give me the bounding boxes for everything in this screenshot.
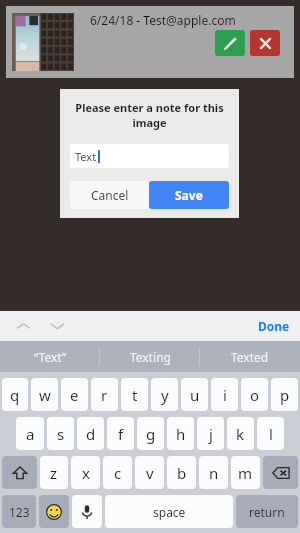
button[interactable]: v <box>135 456 164 489</box>
button[interactable]: space <box>105 495 233 528</box>
staticText: Done <box>258 318 290 334</box>
staticText: o <box>250 385 260 405</box>
button[interactable]: Previous field <box>12 315 34 337</box>
button[interactable]: t <box>121 378 148 411</box>
button[interactable]: Texted <box>200 341 300 372</box>
button[interactable]: Done <box>258 318 290 334</box>
button[interactable]: b <box>167 456 196 489</box>
staticText: 123 <box>9 504 30 520</box>
staticText: Please enter a note for this image <box>74 100 225 130</box>
button[interactable]: Backspace <box>263 456 298 489</box>
button[interactable]: h <box>167 417 194 450</box>
staticText: Save <box>175 187 203 203</box>
staticText: e <box>70 385 79 405</box>
button[interactable]: Next field <box>46 315 68 337</box>
button[interactable]: y <box>151 378 178 411</box>
button[interactable]: Cancel <box>70 181 149 209</box>
staticText: p <box>280 385 290 405</box>
button[interactable]: j <box>197 417 224 450</box>
button[interactable]: 123 <box>2 495 36 528</box>
button[interactable]: e <box>61 378 88 411</box>
button[interactable]: Shift <box>2 456 37 489</box>
staticText: m <box>238 463 253 483</box>
staticText: v <box>146 463 154 483</box>
staticText: return <box>249 504 285 520</box>
staticText: a <box>26 424 35 444</box>
button[interactable]: n <box>199 456 228 489</box>
staticText: Cancel <box>91 187 129 203</box>
button[interactable]: u <box>181 378 208 411</box>
staticText: u <box>190 385 200 405</box>
staticText: t <box>132 385 138 405</box>
button[interactable]: Texting <box>100 341 200 372</box>
staticText: d <box>86 424 96 444</box>
staticText: g <box>146 424 156 444</box>
button[interactable]: c <box>103 456 132 489</box>
button[interactable]: f <box>107 417 134 450</box>
staticText: l <box>269 424 273 444</box>
button[interactable]: l <box>257 417 284 450</box>
staticText: h <box>176 424 186 444</box>
button[interactable]: z <box>40 456 68 489</box>
button[interactable]: “Text” <box>0 341 100 372</box>
button[interactable]: p <box>271 378 298 411</box>
button[interactable]: i <box>211 378 238 411</box>
button[interactable]: g <box>137 417 164 450</box>
button[interactable]: Text <box>70 144 229 168</box>
button[interactable]: Save <box>149 181 229 209</box>
button[interactable]: Delete image <box>250 30 280 56</box>
staticText: j <box>209 424 213 444</box>
button[interactable]: k <box>227 417 254 450</box>
button[interactable]: x <box>71 456 100 489</box>
staticText: i <box>223 385 227 405</box>
staticText: b <box>177 463 187 483</box>
staticText: r <box>101 385 108 405</box>
button[interactable]: return <box>236 495 298 528</box>
button[interactable]: q <box>2 378 28 411</box>
staticText: Texting <box>130 349 171 365</box>
staticText: Text <box>75 149 97 164</box>
staticText: q <box>10 385 20 405</box>
staticText: f <box>118 424 124 444</box>
button[interactable]: Dictation <box>72 495 102 528</box>
staticText: n <box>209 463 219 483</box>
button[interactable]: r <box>91 378 118 411</box>
staticText: 6/24/18 - Test@apple.com <box>90 12 236 28</box>
staticText: x <box>82 463 90 483</box>
staticText: w <box>39 385 51 405</box>
staticText: “Text” <box>34 349 67 365</box>
staticText: space <box>153 504 186 520</box>
button[interactable]: Edit note <box>215 30 245 56</box>
button[interactable]: a <box>16 417 44 450</box>
staticText: y <box>161 385 169 405</box>
button[interactable]: s <box>47 417 74 450</box>
staticText: c <box>114 463 122 483</box>
button[interactable]: d <box>77 417 104 450</box>
staticText: k <box>236 424 245 444</box>
staticText: z <box>50 463 58 483</box>
button[interactable]: m <box>231 456 260 489</box>
button[interactable]: Emoji keyboard <box>39 495 69 528</box>
staticText: Texted <box>231 349 269 365</box>
button[interactable]: w <box>31 378 58 411</box>
staticText: s <box>57 424 65 444</box>
button[interactable]: o <box>241 378 268 411</box>
